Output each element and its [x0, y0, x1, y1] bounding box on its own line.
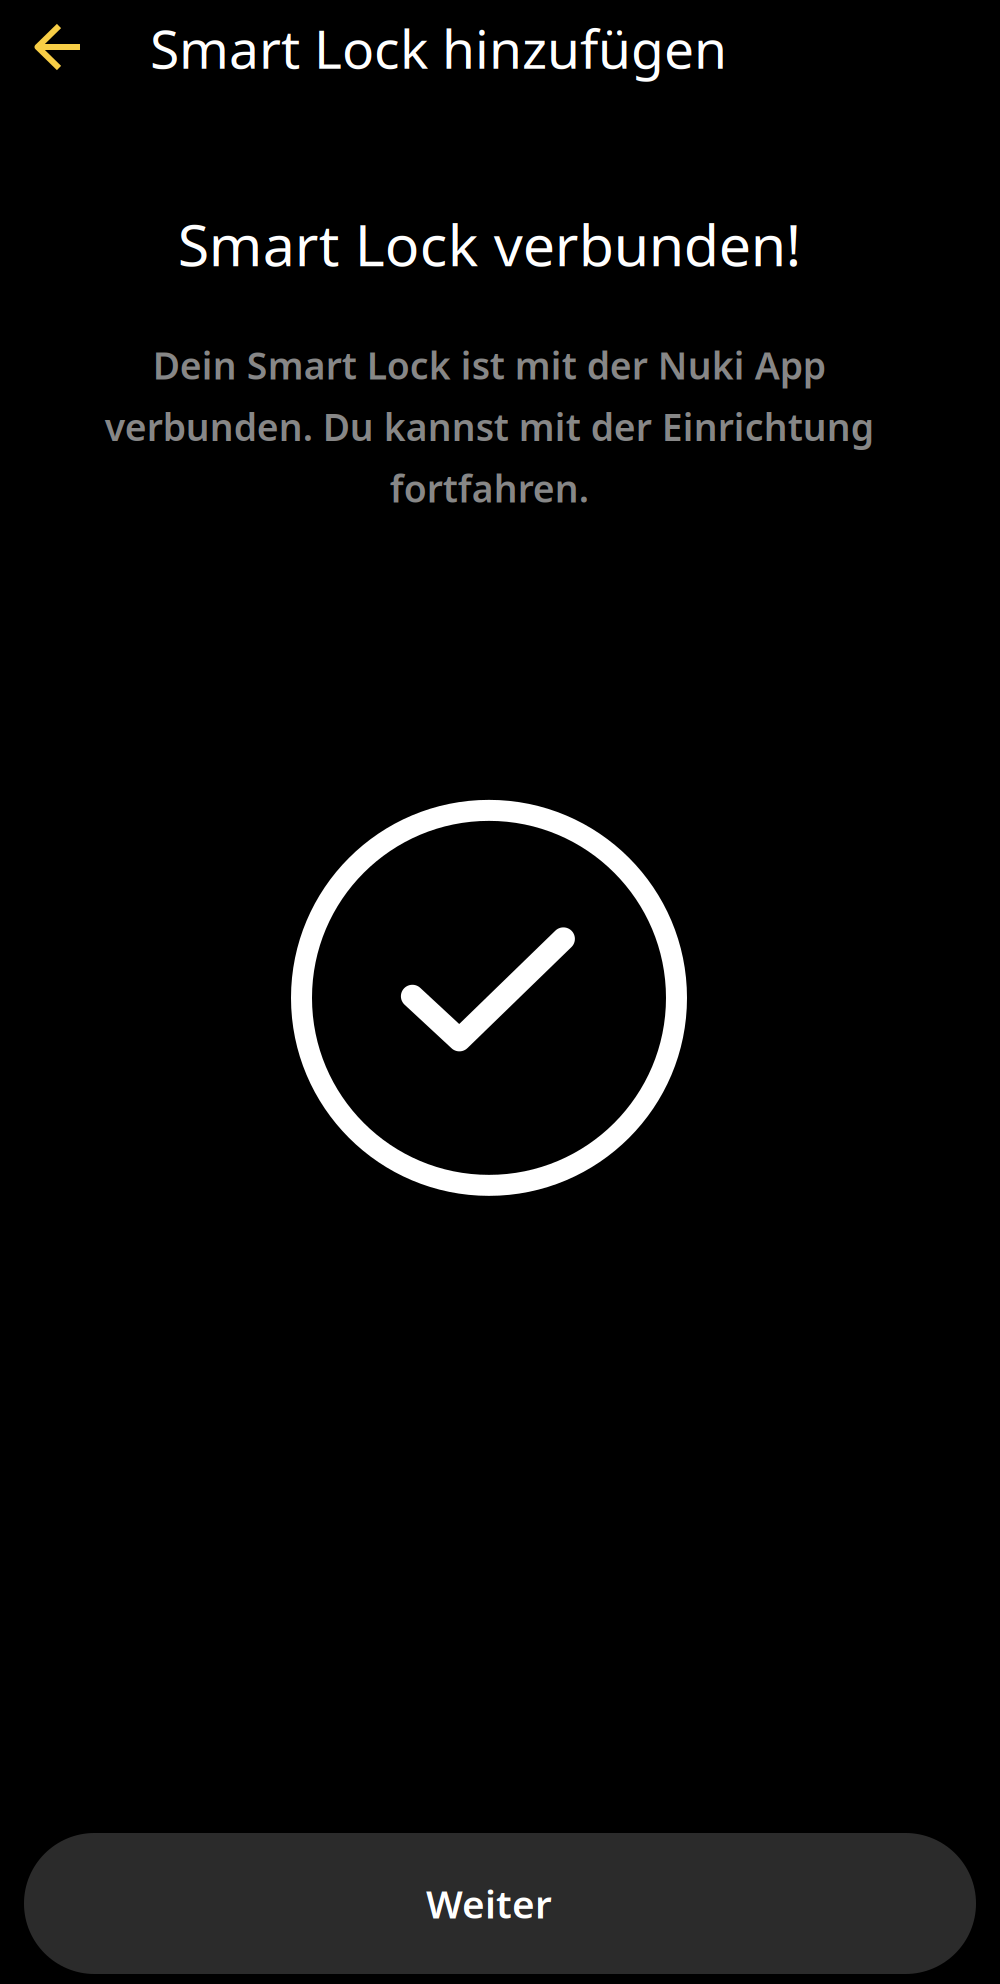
staticText: Smart Lock verbunden!: [177, 206, 800, 282]
staticText: Weiter: [426, 1878, 552, 1929]
staticText: Smart Lock hinzufügen: [150, 13, 727, 83]
button[interactable]: Weiter: [24, 1833, 976, 1974]
button[interactable]: Zurück: [0, 0, 150, 96]
staticText: Dein Smart Lock ist mit der Nuki App ver…: [104, 340, 873, 513]
